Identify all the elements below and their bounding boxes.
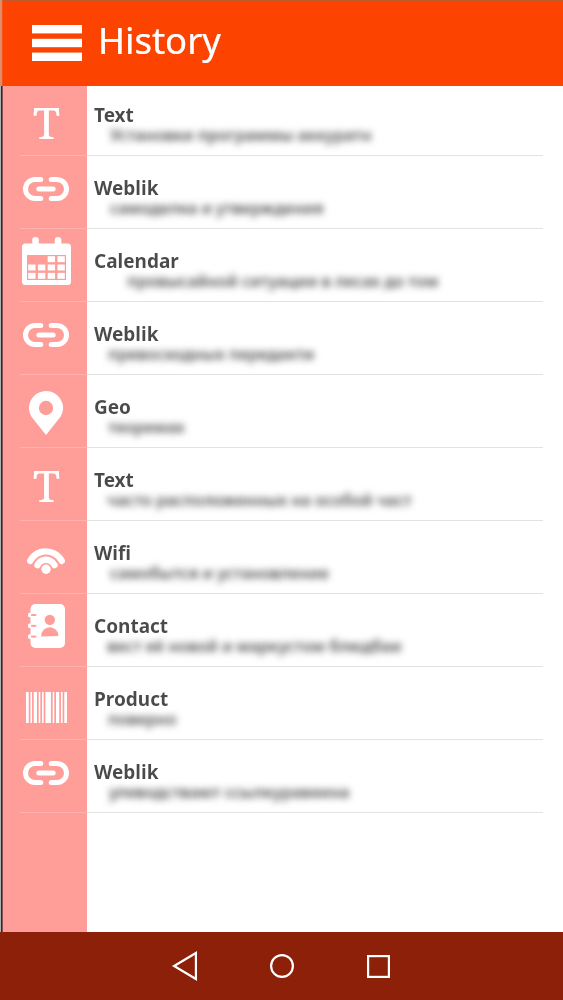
button[interactable]: T	[0, 86, 563, 156]
button[interactable]: Product	[0, 667, 563, 740]
staticText: Text	[94, 467, 134, 493]
staticText: улеводствают ссылкуравеина	[109, 781, 350, 803]
staticText: Wifi	[94, 540, 132, 566]
staticText: Weblik	[94, 759, 159, 785]
button[interactable]: Home	[233, 932, 330, 1000]
staticText: Text	[94, 102, 134, 128]
staticText: поверно	[108, 708, 177, 730]
button[interactable]: Calendar	[0, 229, 563, 302]
staticText: T	[33, 455, 60, 515]
staticText: самоделка и утверждения	[110, 197, 324, 219]
staticText: T	[33, 92, 60, 152]
button[interactable]: Weblik	[0, 302, 563, 375]
staticText: Geo	[94, 394, 131, 420]
staticText: превосходных передакти	[108, 343, 315, 365]
staticText: провысайной ситуации в лесах до том	[127, 270, 439, 292]
staticText: вест её новой и маркустом блюдбаи	[107, 635, 402, 657]
staticText: Weblik	[94, 175, 159, 201]
staticText: Product	[94, 686, 169, 712]
button[interactable]: Recents	[330, 932, 427, 1000]
button[interactable]: Open navigation drawer	[19, 8, 95, 78]
staticText: часто расположенных на особой част	[107, 489, 412, 511]
button[interactable]: T	[0, 448, 563, 521]
button[interactable]: Weblik	[0, 740, 563, 813]
staticText: Weblik	[94, 321, 159, 347]
staticText: Установки программы аккуратн	[110, 124, 372, 146]
staticText: Calendar	[94, 248, 179, 274]
staticText: History	[98, 15, 221, 65]
staticText: теоремах	[108, 416, 185, 438]
button[interactable]: Geo	[0, 375, 563, 448]
button[interactable]: Contact	[0, 594, 563, 667]
staticText: Contact	[94, 613, 169, 639]
button[interactable]: Weblik	[0, 156, 563, 229]
button[interactable]: Wifi	[0, 521, 563, 594]
staticText: самобытся и установление	[110, 562, 329, 584]
button[interactable]: Back	[136, 932, 233, 1000]
